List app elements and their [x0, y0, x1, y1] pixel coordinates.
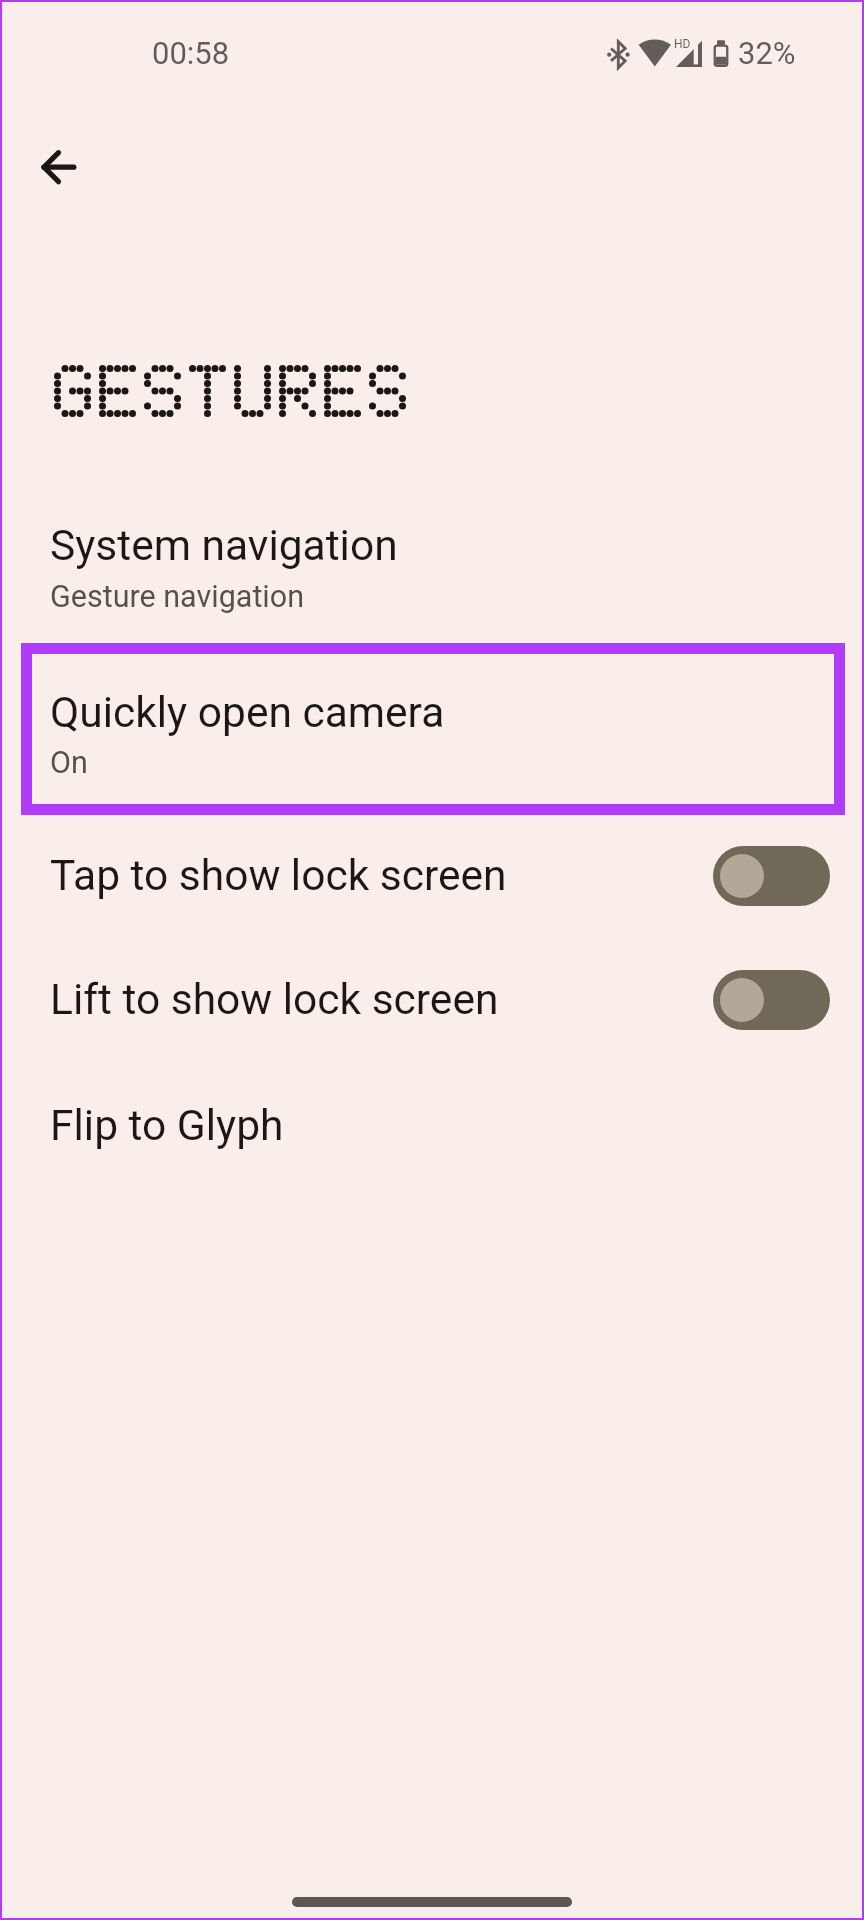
staticText: Lift to show lock screen [50, 975, 499, 1025]
button[interactable]: Back [6, 115, 110, 219]
staticText: On [50, 745, 88, 781]
button[interactable]: Lift to show lock screen [713, 970, 830, 1030]
button[interactable]: Flip to Glyph [0, 1076, 864, 1176]
button[interactable]: Tap to show lock screen [713, 846, 830, 906]
staticText: Flip to Glyph [50, 1101, 284, 1151]
staticText: 32% [738, 35, 796, 71]
button[interactable]: Quickly open camera [21, 643, 845, 815]
button[interactable]: Lift to show lock screen [0, 950, 864, 1050]
button[interactable]: System navigation [0, 498, 864, 630]
staticText: Tap to show lock screen [50, 851, 507, 901]
staticText: HD [674, 37, 691, 51]
staticText: Quickly open camera [50, 688, 445, 738]
button[interactable]: Tap to show lock screen [0, 826, 864, 926]
staticText: System navigation [50, 521, 398, 571]
staticText: 00:58 [152, 35, 230, 71]
staticText: Gesture navigation [50, 579, 305, 615]
